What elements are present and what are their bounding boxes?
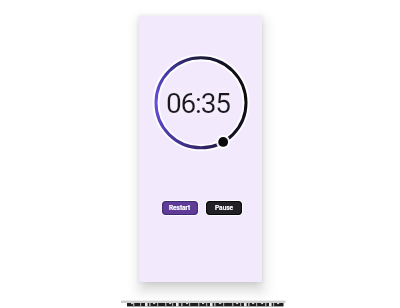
button[interactable]: Restart	[161, 200, 199, 216]
staticText: Pause	[215, 204, 234, 212]
button[interactable]: Pause	[205, 200, 243, 216]
staticText: 06:35	[166, 87, 230, 119]
staticText: Restart	[169, 204, 191, 212]
